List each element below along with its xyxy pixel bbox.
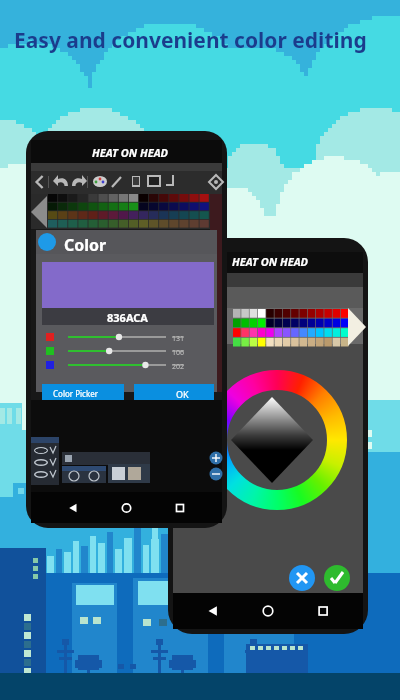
- staticText: 106: [172, 348, 185, 358]
- staticText: Color: [64, 234, 107, 256]
- staticText: HEAT ON HEAD: [232, 254, 309, 269]
- staticText: 202: [172, 362, 185, 372]
- staticText: OK: [176, 388, 189, 400]
- staticText: Easy and convenient color editing: [14, 26, 367, 55]
- staticText: HEAT ON HEAD: [92, 145, 169, 160]
- staticText: 131: [172, 334, 185, 344]
- staticText: 836ACA: [107, 310, 148, 325]
- staticText: Color Picker: [53, 388, 99, 399]
